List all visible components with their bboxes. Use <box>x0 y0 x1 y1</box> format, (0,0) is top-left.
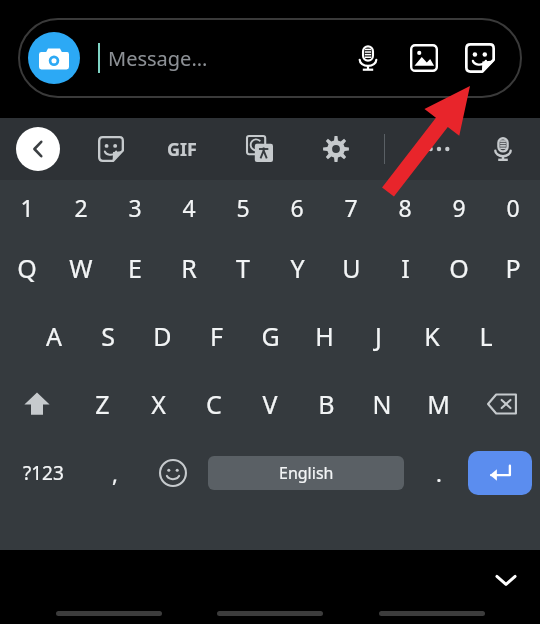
staticText: Z <box>95 387 110 421</box>
button[interactable]: J <box>351 302 405 370</box>
button[interactable]: M <box>410 370 466 438</box>
button[interactable]: S <box>81 302 135 370</box>
button[interactable]: 6 <box>270 180 324 234</box>
button[interactable]: Shift <box>0 370 74 438</box>
button[interactable]: G <box>243 302 297 370</box>
staticText: 7 <box>344 192 358 223</box>
staticText: . <box>436 458 442 488</box>
button[interactable]: P <box>486 234 540 302</box>
button[interactable]: . <box>410 438 468 508</box>
button[interactable]: R <box>162 234 216 302</box>
staticText: N <box>372 387 392 421</box>
button[interactable]: Hide keyboard <box>484 558 528 602</box>
button[interactable]: V <box>242 370 298 438</box>
button[interactable]: 4 <box>162 180 216 234</box>
button[interactable]: Enter <box>468 451 532 495</box>
button[interactable]: O <box>432 234 486 302</box>
staticText: T <box>236 251 250 285</box>
staticText: 6 <box>290 192 304 223</box>
staticText: H <box>315 319 334 353</box>
staticText: Y <box>290 251 305 285</box>
staticText: S <box>101 319 115 353</box>
button[interactable]: 7 <box>324 180 378 234</box>
button[interactable]: 0 <box>486 180 540 234</box>
button[interactable]: ?123 <box>0 438 86 508</box>
staticText: 2 <box>74 192 88 223</box>
button[interactable]: , <box>86 438 144 508</box>
staticText: 5 <box>236 192 250 223</box>
staticText: U <box>342 251 361 285</box>
button[interactable]: Q <box>0 234 54 302</box>
button[interactable]: A <box>27 302 81 370</box>
staticText: O <box>449 251 469 285</box>
staticText: X <box>151 387 166 421</box>
staticText: C <box>206 387 222 421</box>
button[interactable]: C <box>186 370 242 438</box>
staticText: M <box>427 387 450 421</box>
staticText: K <box>424 319 440 353</box>
button[interactable]: Voice input <box>480 126 526 172</box>
button[interactable]: N <box>354 370 410 438</box>
staticText: 4 <box>182 192 196 223</box>
button[interactable]: I <box>378 234 432 302</box>
button[interactable]: U <box>324 234 378 302</box>
button[interactable]: 2 <box>54 180 108 234</box>
staticText: Q <box>17 251 37 285</box>
button[interactable]: E <box>108 234 162 302</box>
button[interactable]: More options <box>416 126 462 172</box>
button[interactable]: Back <box>16 127 60 171</box>
staticText: 1 <box>20 192 34 223</box>
button[interactable]: F <box>189 302 243 370</box>
staticText: J <box>375 319 382 353</box>
staticText: 3 <box>128 192 142 223</box>
button[interactable]: GIF <box>157 124 207 174</box>
button[interactable]: X <box>130 370 186 438</box>
button[interactable]: Backspace <box>466 370 540 438</box>
staticText: English <box>279 462 334 484</box>
button[interactable]: Y <box>270 234 324 302</box>
staticText: A <box>46 319 62 353</box>
button[interactable]: Z <box>74 370 130 438</box>
staticText: F <box>210 319 223 353</box>
staticText: B <box>318 387 335 421</box>
button[interactable]: 3 <box>108 180 162 234</box>
button[interactable]: 5 <box>216 180 270 234</box>
staticText: V <box>262 387 278 421</box>
button[interactable]: English <box>208 456 404 490</box>
button[interactable]: Settings <box>313 126 359 172</box>
staticText: L <box>479 319 493 353</box>
staticText: Message... <box>108 45 208 72</box>
button[interactable]: W <box>54 234 108 302</box>
staticText: R <box>181 251 197 285</box>
button[interactable]: Stickers <box>458 36 502 80</box>
button[interactable]: L <box>459 302 513 370</box>
staticText: I <box>401 251 410 285</box>
staticText: 9 <box>452 192 466 223</box>
button[interactable]: Stickers <box>88 126 134 172</box>
button[interactable]: Voice message <box>346 36 390 80</box>
button[interactable]: Camera <box>28 32 80 84</box>
button[interactable]: Emoji <box>144 438 202 508</box>
button[interactable]: 9 <box>432 180 486 234</box>
button[interactable]: T <box>216 234 270 302</box>
button[interactable]: D <box>135 302 189 370</box>
button[interactable]: Translate <box>237 126 283 172</box>
button[interactable]: 1 <box>0 180 54 234</box>
staticText: D <box>153 319 172 353</box>
staticText: 0 <box>506 192 520 223</box>
staticText: ?123 <box>23 460 64 486</box>
button[interactable]: 8 <box>378 180 432 234</box>
staticText: G <box>261 319 280 353</box>
staticText: E <box>128 251 142 285</box>
staticText: W <box>69 251 93 285</box>
button[interactable]: Gallery <box>402 36 446 80</box>
staticText: P <box>505 251 521 285</box>
staticText: GIF <box>167 137 197 162</box>
button[interactable]: H <box>297 302 351 370</box>
staticText: , <box>112 458 118 488</box>
staticText: 8 <box>398 192 412 223</box>
button[interactable]: K <box>405 302 459 370</box>
button[interactable]: B <box>298 370 354 438</box>
